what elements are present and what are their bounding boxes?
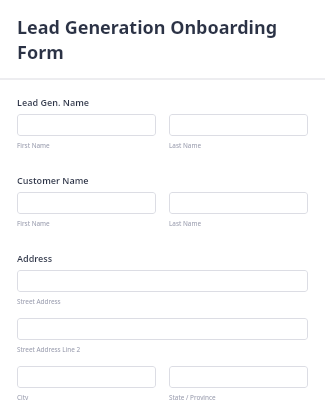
- staticText: Lead Gen. Name: [17, 96, 90, 108]
- staticText: Lead Generation Onboarding Form: [17, 15, 313, 65]
- staticText: Customer Name: [17, 174, 89, 186]
- staticText: Last Name: [169, 141, 201, 150]
- button[interactable]: First Name: [17, 192, 156, 214]
- button[interactable]: Last Name: [169, 114, 308, 136]
- staticText: City: [17, 393, 29, 400]
- button[interactable]: City: [17, 366, 156, 388]
- staticText: Address: [17, 252, 53, 264]
- staticText: First Name: [17, 141, 50, 150]
- staticText: First Name: [17, 219, 50, 228]
- button[interactable]: First Name: [17, 114, 156, 136]
- staticText: Street Address Line 2: [17, 345, 81, 354]
- staticText: State / Province: [169, 393, 216, 400]
- button[interactable]: Street Address: [17, 270, 308, 292]
- button[interactable]: Last Name: [169, 192, 308, 214]
- button[interactable]: State / Province: [169, 366, 308, 388]
- staticText: Street Address: [17, 297, 61, 306]
- staticText: Last Name: [169, 219, 201, 228]
- button[interactable]: Street Address Line 2: [17, 318, 308, 340]
